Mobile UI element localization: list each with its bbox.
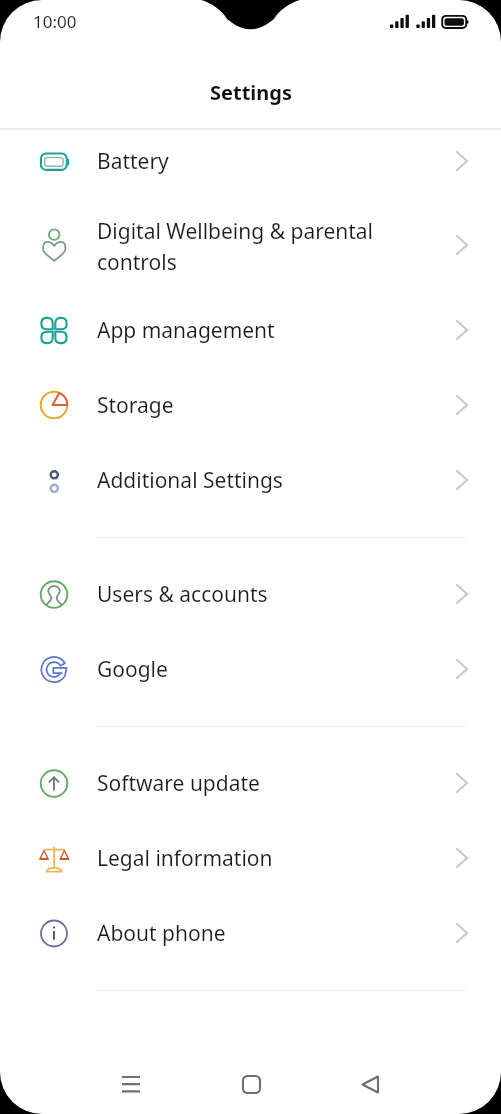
button[interactable]: Additional Settings [0, 443, 501, 518]
staticText: App management [97, 316, 387, 345]
button[interactable]: Software update [0, 746, 501, 821]
staticText: Storage [97, 391, 387, 420]
staticText: Battery [97, 147, 387, 176]
button[interactable]: Battery [0, 124, 501, 199]
button[interactable]: Recent apps [101, 1054, 161, 1114]
staticText: Software update [97, 769, 387, 798]
button[interactable]: Legal information [0, 821, 501, 896]
staticText: About phone [97, 919, 387, 948]
staticText: 10:00 [33, 10, 77, 33]
button[interactable]: Digital Wellbeing & parental controls [0, 199, 501, 293]
button[interactable]: About phone [0, 896, 501, 971]
button[interactable]: App management [0, 293, 501, 368]
staticText: Google [97, 655, 387, 684]
button[interactable]: Home [221, 1054, 281, 1114]
button[interactable]: Users & accounts [0, 557, 501, 632]
button[interactable]: Back [340, 1054, 400, 1114]
staticText: Digital Wellbeing & parental controls [97, 217, 387, 276]
staticText: Additional Settings [97, 466, 387, 495]
staticText: Settings [210, 79, 292, 106]
button[interactable]: Google [0, 632, 501, 707]
button[interactable]: Storage [0, 368, 501, 443]
staticText: Users & accounts [97, 580, 387, 609]
staticText: Legal information [97, 844, 387, 873]
